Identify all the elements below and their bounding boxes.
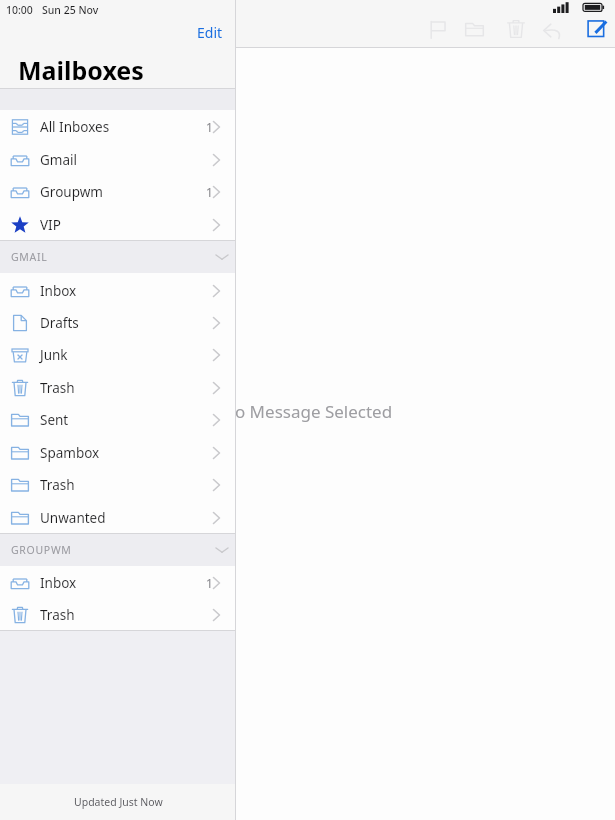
button[interactable]: Delete [501, 14, 531, 44]
staticText: VIP [40, 216, 61, 234]
staticText: No Message Selected [222, 400, 393, 423]
button[interactable]: Inbox [0, 566, 236, 599]
staticText: Junk [40, 346, 68, 364]
staticText: All Inboxes [40, 118, 110, 136]
staticText: Updated Just Now [74, 795, 163, 809]
button[interactable]: GROUPWM [0, 534, 236, 566]
staticText: 1 [206, 119, 213, 135]
button[interactable]: Sent [0, 403, 236, 436]
staticText: Spambox [40, 444, 100, 462]
button[interactable]: Reply [538, 16, 567, 45]
staticText: Inbox [40, 282, 77, 300]
button[interactable]: Compose [582, 14, 611, 43]
button[interactable]: Flag [423, 15, 452, 44]
staticText: Sent [40, 411, 69, 429]
button[interactable]: Trash [0, 598, 236, 631]
button[interactable]: Move to folder [460, 15, 489, 44]
button[interactable]: Junk [0, 338, 236, 371]
staticText: Sun 25 Nov [42, 3, 99, 17]
button[interactable]: Edit [190, 20, 230, 44]
button[interactable]: VIP [0, 208, 236, 241]
staticText: 1 [206, 184, 213, 200]
staticText: Drafts [40, 314, 79, 332]
staticText: Trash [40, 476, 75, 494]
button[interactable]: Groupwm [0, 175, 236, 208]
button[interactable]: Trash [0, 371, 236, 404]
button[interactable]: Drafts [0, 306, 236, 339]
staticText: Mailboxes [18, 53, 144, 87]
button[interactable]: Unwanted [0, 501, 236, 534]
staticText: GMAIL [11, 250, 48, 264]
staticText: 1 [206, 575, 213, 591]
button[interactable]: Inbox [0, 274, 236, 307]
staticText: Trash [40, 379, 75, 397]
staticText: Inbox [40, 574, 77, 592]
staticText: Unwanted [40, 509, 106, 527]
staticText: Gmail [40, 151, 77, 169]
staticText: 10:00 [6, 3, 33, 17]
staticText: Trash [40, 606, 75, 624]
staticText: Edit [197, 23, 223, 42]
button[interactable]: Gmail [0, 143, 236, 176]
button[interactable]: GMAIL [0, 241, 236, 273]
button[interactable]: All Inboxes [0, 110, 236, 143]
staticText: Groupwm [40, 183, 103, 201]
staticText: GROUPWM [11, 543, 72, 557]
button[interactable]: Spambox [0, 436, 236, 469]
button[interactable]: Trash [0, 468, 236, 501]
